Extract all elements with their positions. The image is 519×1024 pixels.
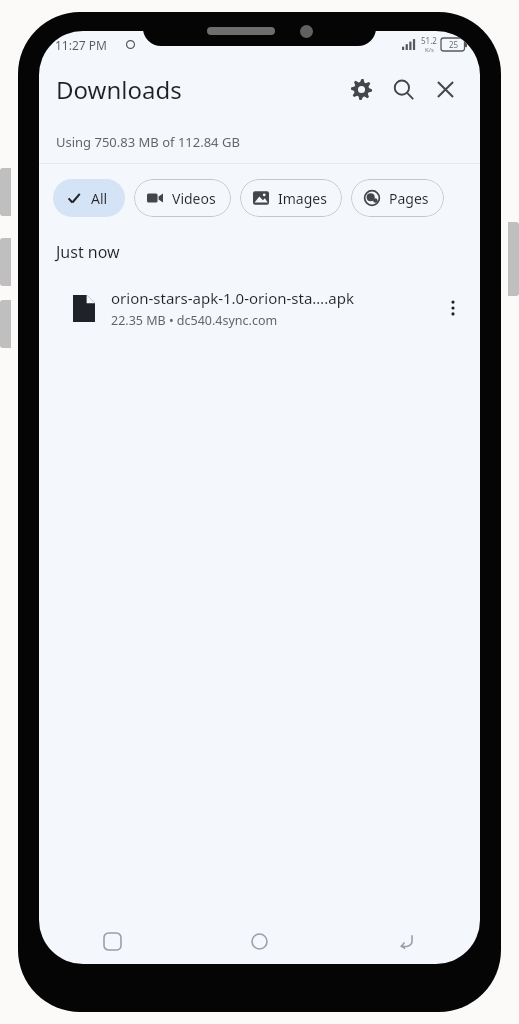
button[interactable]: Videos: [134, 179, 231, 217]
button[interactable]: orion-stars-apk-1.0-orion-sta….apk: [39, 277, 480, 339]
button[interactable]: Images: [240, 179, 342, 217]
staticText: 11:27 PM: [55, 37, 107, 53]
button[interactable]: More options: [432, 287, 474, 329]
staticText: 25: [449, 39, 459, 50]
staticText: Downloads: [56, 73, 182, 106]
staticText: 22.35 MB • dc540.4sync.com: [111, 312, 278, 329]
button[interactable]: Search: [382, 68, 424, 110]
staticText: Just now: [56, 241, 120, 263]
staticText: Videos: [172, 189, 216, 208]
button[interactable]: Back: [333, 918, 480, 964]
staticText: Pages: [389, 189, 429, 208]
staticText: K/s: [425, 46, 434, 54]
staticText: 51.2: [421, 35, 437, 46]
staticText: Using 750.83 MB of 112.84 GB: [56, 133, 240, 151]
staticText: orion-stars-apk-1.0-orion-sta….apk: [111, 288, 354, 308]
button[interactable]: Recents: [39, 918, 186, 964]
button[interactable]: All: [53, 179, 125, 217]
button[interactable]: Pages: [351, 179, 444, 217]
button[interactable]: Settings: [340, 68, 382, 110]
staticText: Images: [278, 189, 327, 208]
button[interactable]: Home: [186, 918, 333, 964]
staticText: All: [91, 189, 108, 208]
button[interactable]: Close: [424, 68, 466, 110]
